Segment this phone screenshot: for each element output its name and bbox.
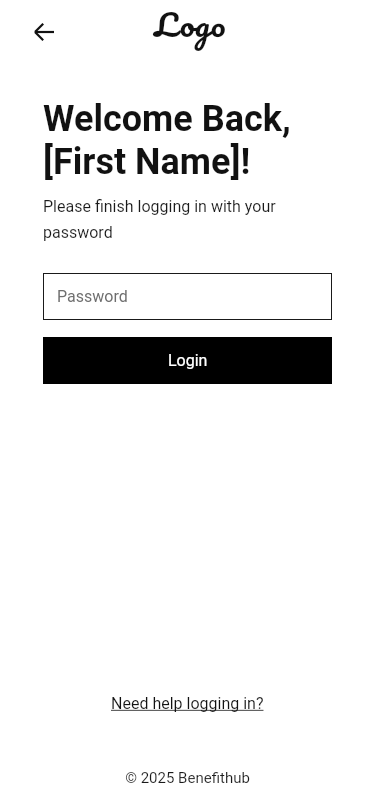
staticText: Welcome Back, [First Name]! (43, 98, 291, 183)
button[interactable]: Login (43, 337, 332, 384)
button[interactable] (20, 8, 68, 56)
staticText: Password (57, 287, 128, 306)
staticText: © 2025 Benefithub (125, 769, 250, 787)
staticText: Login (168, 351, 208, 370)
staticText: Please finish logging in with your passw… (43, 197, 332, 241)
staticText: Need help logging in? (111, 694, 264, 713)
staticText: Logo (154, 0, 226, 50)
button[interactable]: Password (43, 273, 332, 320)
button[interactable]: Need help logging in? (103, 690, 272, 717)
